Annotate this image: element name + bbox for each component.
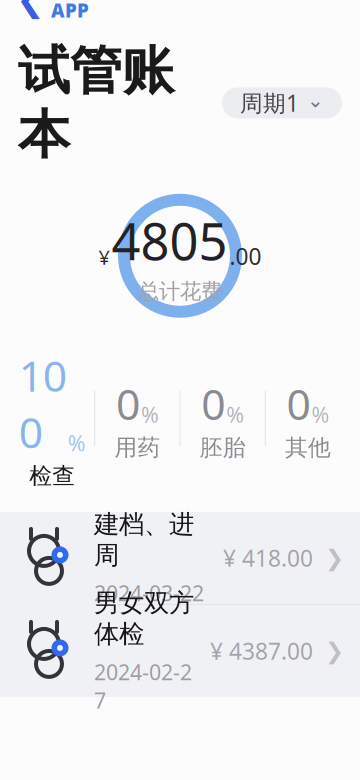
button[interactable]: 男女双方体检 bbox=[0, 605, 360, 697]
staticText: 胚胎 bbox=[200, 434, 246, 462]
staticText: ❮ bbox=[16, 0, 45, 19]
button[interactable]: Back bbox=[16, 0, 131, 27]
staticText: 0 bbox=[286, 375, 310, 432]
staticText: 2024-03-22 bbox=[94, 579, 204, 607]
staticText: 0 bbox=[201, 375, 225, 432]
staticText: 周期1 bbox=[240, 88, 299, 118]
staticText: 0 bbox=[116, 375, 140, 432]
staticText: 2024-02-27 bbox=[94, 658, 192, 714]
staticText: .00 bbox=[229, 241, 261, 271]
staticText: 100 bbox=[19, 347, 67, 460]
staticText: ❯ bbox=[325, 638, 344, 664]
button[interactable]: 建档、进周 bbox=[0, 512, 360, 604]
staticText: 试管账本 bbox=[18, 39, 174, 167]
staticText: 检查 bbox=[29, 462, 75, 490]
staticText: ❯ bbox=[325, 545, 344, 571]
staticText: 男女双方体检 bbox=[94, 587, 194, 650]
staticText: % bbox=[68, 429, 86, 457]
staticText: % bbox=[226, 400, 244, 429]
staticText: 用药 bbox=[114, 434, 160, 462]
staticText: ¥ bbox=[98, 244, 109, 270]
staticText: ¥ 418.00 bbox=[223, 543, 313, 573]
staticText: % bbox=[141, 400, 159, 429]
staticText: ¥ 4387.00 bbox=[210, 636, 313, 666]
staticText: 总计花费 bbox=[138, 278, 222, 304]
staticText: 其他 bbox=[285, 434, 331, 462]
staticText: APP bbox=[51, 0, 89, 23]
staticText: % bbox=[311, 400, 329, 429]
button[interactable]: 周期1 bbox=[222, 87, 342, 118]
staticText: 建档、进周 bbox=[94, 509, 194, 571]
staticText: 4805 bbox=[111, 207, 227, 274]
staticText: ⌄ bbox=[307, 89, 324, 112]
